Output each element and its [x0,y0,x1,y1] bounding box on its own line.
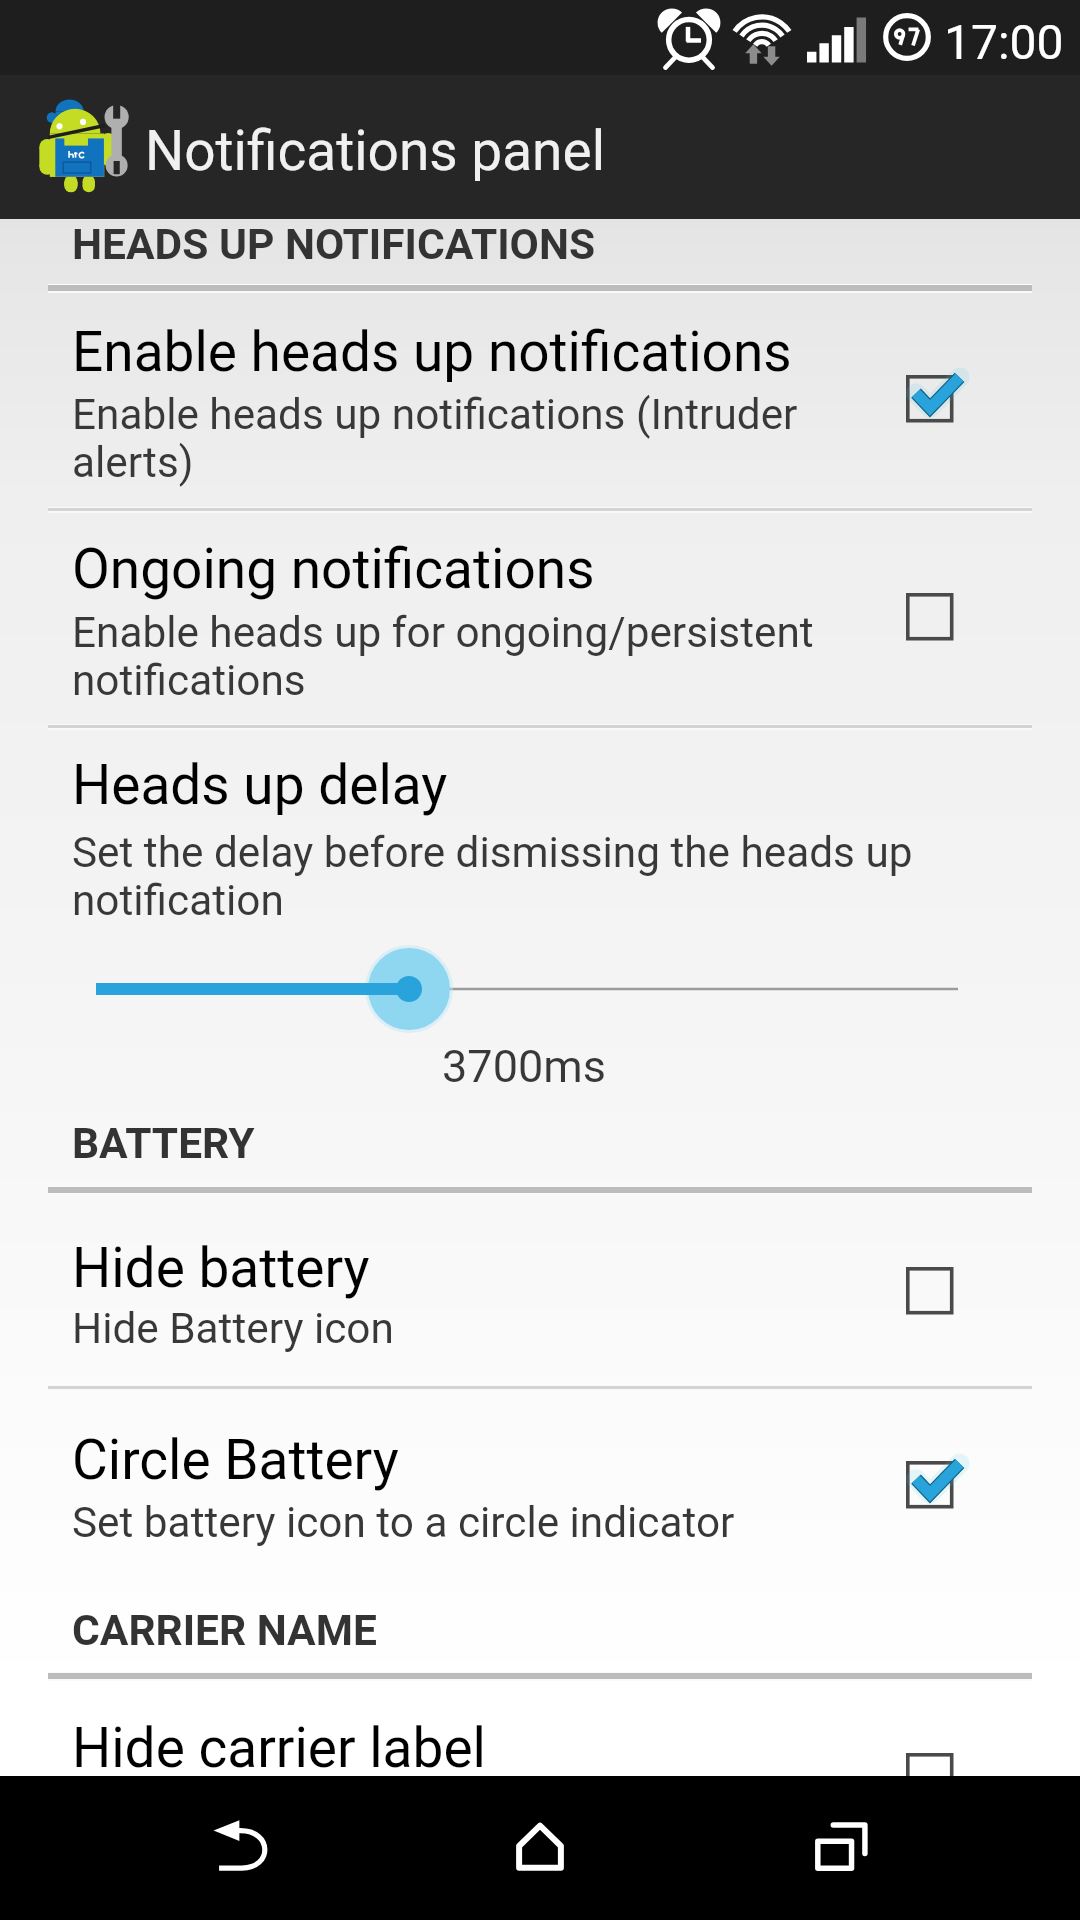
staticText: Enable heads up for ongoing/persistent [72,608,814,658]
staticText: notification [72,876,284,926]
staticText: Set battery icon to a circle indicator [72,1498,735,1548]
button[interactable]: Back [152,1776,332,1920]
staticText: Ongoing notifications [72,537,595,601]
staticText: Hide carrier label [72,1716,486,1780]
staticText: alerts) [72,438,194,488]
button[interactable] [0,1389,1080,1576]
button[interactable] [0,300,1080,508]
staticText: 3700ms [0,1040,1048,1093]
staticText: CARRIER NAME [72,1606,377,1656]
staticText: BATTERY [72,1119,255,1169]
staticText: HEADS UP NOTIFICATIONS [72,220,596,270]
button[interactable]: Recent apps [748,1776,928,1920]
button[interactable] [0,1688,1080,1776]
button[interactable]: Home [450,1776,630,1920]
button[interactable] [0,511,1080,725]
button[interactable] [0,1200,1080,1386]
button[interactable] [0,728,1080,1088]
staticText: Set the delay before dismissing the head… [72,828,913,878]
staticText: Enable heads up notifications (Intruder [72,390,798,440]
staticText: Hide battery [72,1236,370,1300]
staticText: 17:00 [944,14,1064,70]
staticText: Circle Battery [72,1428,399,1492]
staticText: Notifications panel [145,119,606,183]
staticText: Hide Battery icon [72,1304,394,1354]
staticText: Enable heads up notifications [72,320,792,384]
staticText: notifications [72,656,306,706]
staticText: Heads up delay [72,753,448,817]
